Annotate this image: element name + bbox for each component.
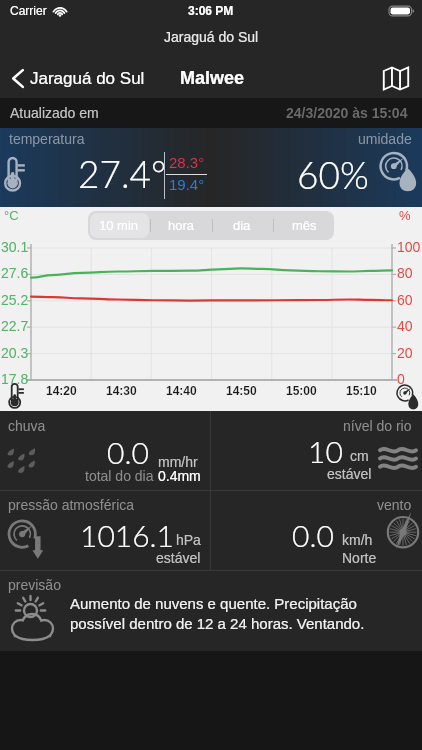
button[interactable]: umidade: [211, 128, 422, 207]
staticText: possível dentro de 12 a 24 horas. Ventan…: [70, 615, 365, 632]
button[interactable]: nível do rio: [211, 411, 422, 490]
staticText: Jaraguá do Sul: [30, 69, 145, 88]
staticText: 17.8: [1, 371, 29, 387]
staticText: 22.7: [1, 318, 29, 334]
button[interactable]: vento: [211, 491, 422, 570]
staticText: 80: [397, 265, 413, 281]
staticText: 40: [397, 318, 413, 334]
staticText: Atualizado em: [10, 105, 99, 121]
button[interactable]: hora: [150, 211, 212, 240]
staticText: hPa: [176, 532, 201, 548]
staticText: 0.0: [292, 517, 334, 553]
staticText: cm: [350, 448, 369, 464]
button[interactable]: mês: [273, 211, 334, 240]
staticText: %: [399, 208, 411, 223]
staticText: temperatura: [9, 131, 85, 147]
staticText: Malwee: [180, 68, 245, 88]
staticText: 14:20: [46, 384, 77, 397]
staticText: 20.3: [1, 345, 29, 361]
staticText: Jaraguá do Sul: [164, 29, 259, 45]
staticText: 14:40: [166, 384, 197, 397]
staticText: mês: [292, 218, 317, 233]
staticText: estável: [156, 550, 201, 566]
staticText: nível do rio: [343, 418, 412, 434]
staticText: 14:30: [106, 384, 137, 397]
button[interactable]: Map: [370, 58, 422, 98]
staticText: °C: [4, 208, 19, 223]
button[interactable]: 10 min: [88, 211, 150, 240]
staticText: 0.0: [107, 434, 149, 470]
button[interactable]: previsão: [0, 571, 422, 651]
staticText: 0.4mm: [158, 468, 201, 484]
staticText: 10: [308, 433, 343, 469]
staticText: dia: [233, 218, 251, 233]
staticText: estável: [327, 466, 372, 482]
staticText: hora: [168, 218, 195, 233]
staticText: Aumento de nuvens e quente. Precipitação: [70, 595, 357, 612]
staticText: 10 min: [99, 218, 139, 233]
button[interactable]: temperatura: [0, 128, 211, 207]
staticText: 27.6: [1, 265, 29, 281]
button[interactable]: Jaraguá do Sul: [0, 58, 155, 98]
staticText: umidade: [358, 131, 412, 147]
staticText: 30.1: [1, 239, 29, 255]
staticText: total do dia: [85, 468, 154, 484]
staticText: vento: [377, 497, 412, 513]
staticText: mm/hr: [158, 454, 198, 470]
staticText: km/h: [342, 532, 373, 548]
staticText: 15:10: [346, 384, 377, 397]
staticText: pressão atmosférica: [8, 497, 135, 513]
staticText: 60%: [297, 152, 369, 196]
staticText: 3:06 PM: [188, 4, 234, 17]
staticText: 0: [397, 371, 405, 387]
staticText: Norte: [342, 550, 377, 566]
staticText: 1016.1: [80, 517, 175, 553]
button[interactable]: dia: [211, 211, 273, 240]
staticText: 27.4°: [78, 151, 167, 195]
button[interactable]: pressão atmosférica: [0, 491, 210, 570]
staticText: 25.2: [1, 292, 29, 308]
staticText: 28.3°: [169, 154, 205, 171]
staticText: 19.4°: [169, 176, 205, 193]
staticText: 20: [397, 345, 413, 361]
staticText: 60: [397, 292, 413, 308]
staticText: chuva: [8, 418, 46, 434]
staticText: 24/3/2020 às 15:04: [286, 105, 408, 121]
staticText: 14:50: [226, 384, 257, 397]
staticText: Carrier: [10, 4, 47, 17]
staticText: previsão: [8, 577, 61, 593]
staticText: 100: [397, 239, 421, 255]
staticText: 15:00: [286, 384, 317, 397]
button[interactable]: chuva: [0, 411, 210, 490]
